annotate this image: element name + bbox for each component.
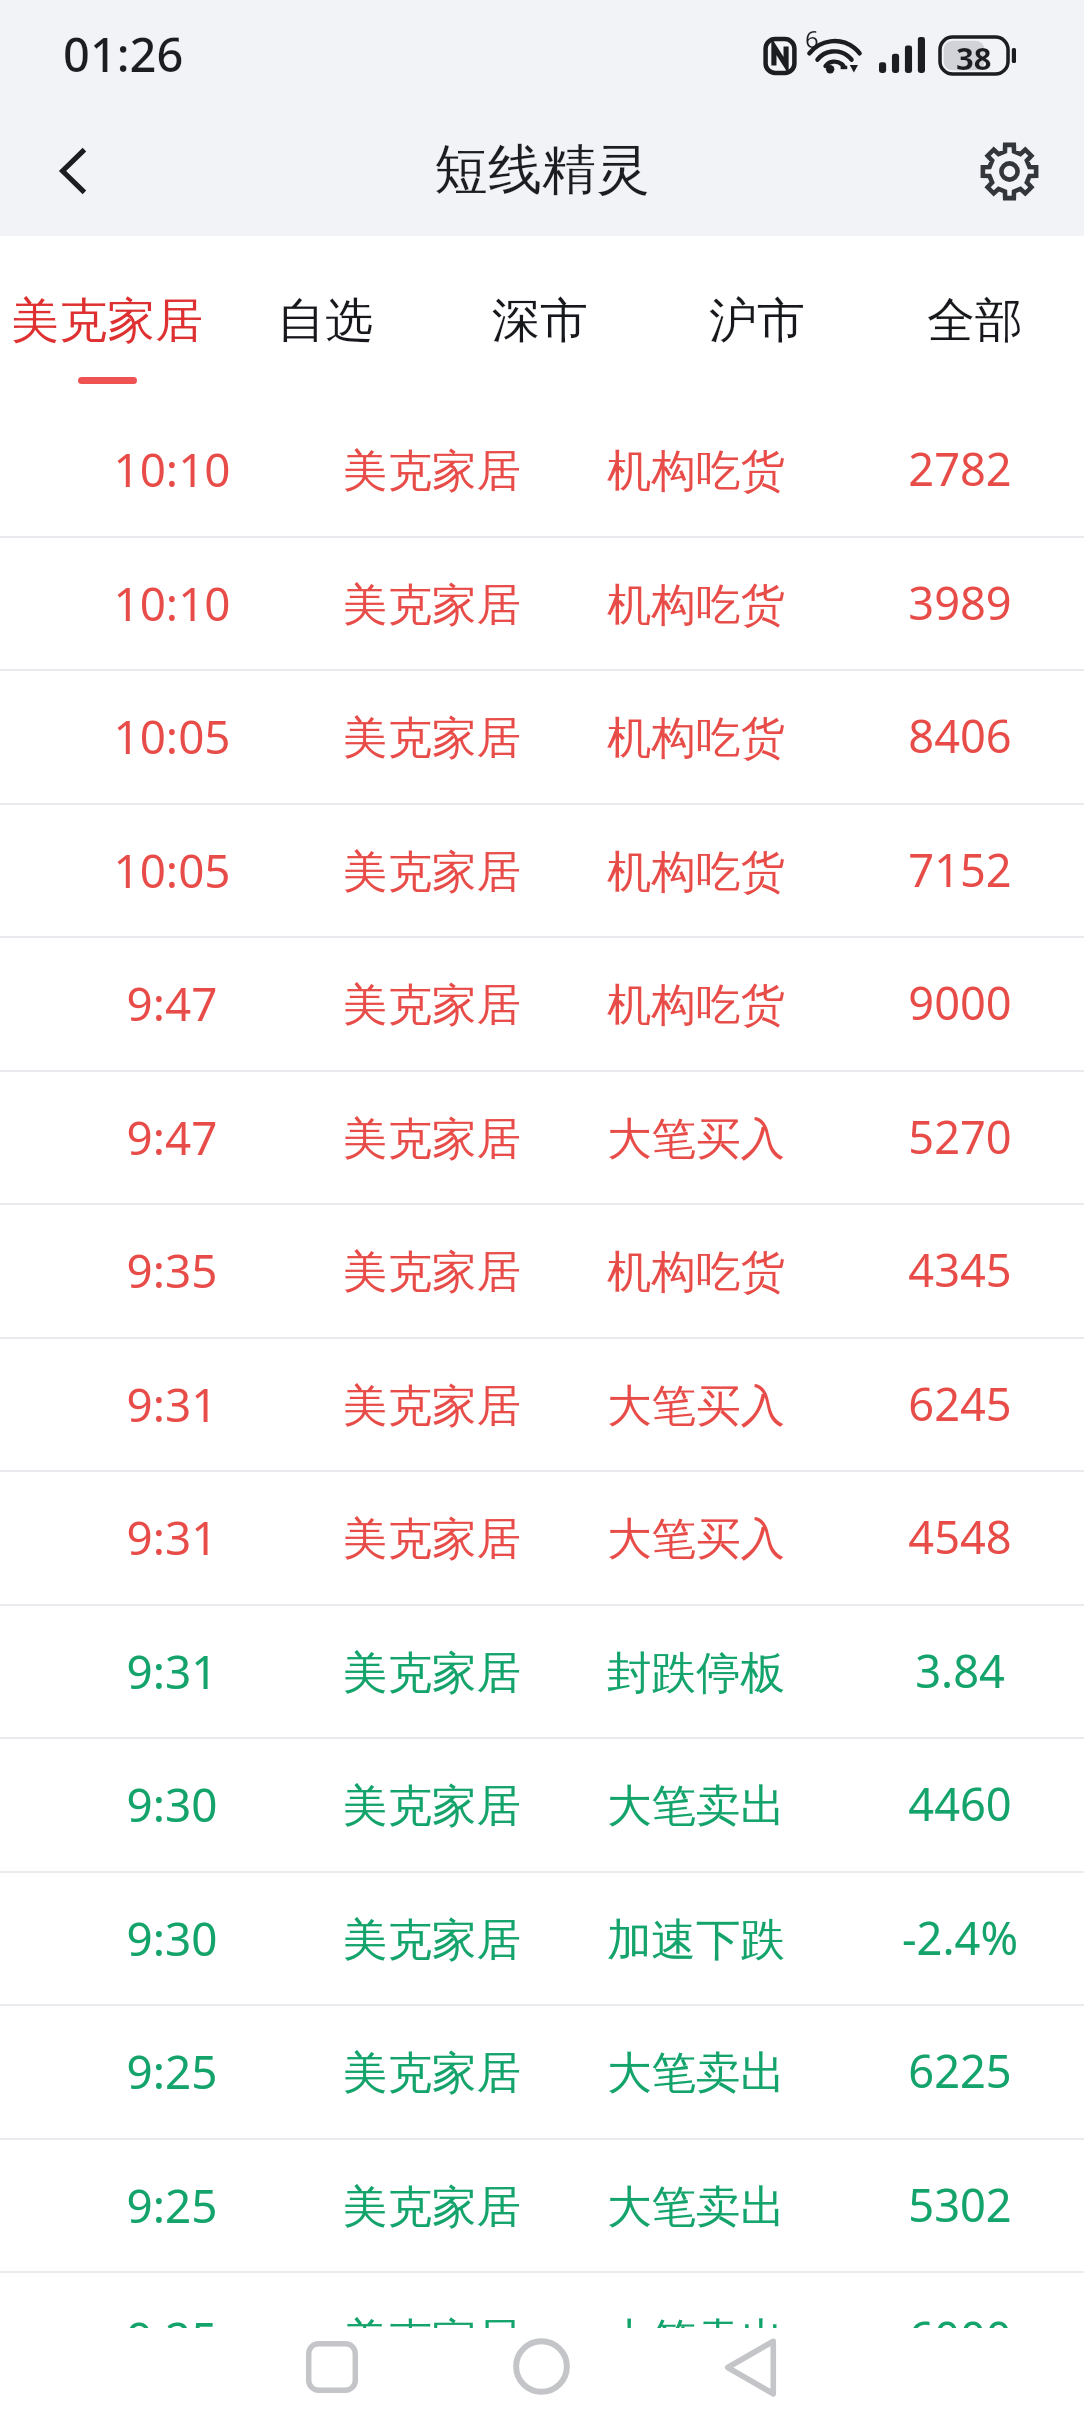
staticText: 9:47 [57, 972, 287, 1034]
button[interactable]: Back [646, 2328, 855, 2412]
button[interactable]: 10:05 [0, 671, 1084, 805]
staticText: 10:05 [57, 839, 287, 901]
button[interactable]: 9:35 [0, 1205, 1084, 1339]
staticText: 沪市 [709, 291, 805, 351]
staticText: 5270 [845, 1106, 1075, 1168]
staticText: 机构吃货 [566, 844, 826, 900]
staticText: 全部 [927, 291, 1023, 351]
staticText: 9:30 [57, 1773, 287, 1835]
staticText: 9:35 [57, 1239, 287, 1301]
staticText: 大笔卖出 [566, 2045, 826, 2101]
button[interactable]: Recents [226, 2328, 437, 2412]
staticText: 4548 [845, 1506, 1075, 1568]
staticText: -2.4% [845, 1907, 1075, 1969]
staticText: 深市 [492, 291, 588, 351]
button[interactable]: 10:10 [0, 404, 1084, 538]
button[interactable]: 沪市 [651, 236, 863, 404]
staticText: 9:25 [57, 2307, 287, 2369]
staticText: 9:30 [57, 1907, 287, 1969]
staticText: 10:10 [57, 438, 287, 500]
button[interactable]: Home [437, 2328, 646, 2412]
staticText: 01:26 [63, 22, 184, 86]
staticText: 9:31 [57, 1506, 287, 1568]
staticText: 4345 [845, 1239, 1075, 1301]
staticText: 6 [805, 22, 819, 55]
staticText: 自选 [277, 291, 373, 351]
staticText: 大笔买入 [566, 1111, 826, 1167]
button[interactable]: 9:47 [0, 938, 1084, 1072]
button[interactable]: 9:25 [0, 2140, 1084, 2274]
button[interactable]: 9:30 [0, 1739, 1084, 1873]
staticText: 机构吃货 [566, 977, 826, 1033]
staticText: 机构吃货 [566, 577, 826, 633]
staticText: 3989 [845, 572, 1075, 634]
staticText: 6225 [845, 2040, 1075, 2102]
staticText: 5302 [845, 2174, 1075, 2236]
staticText: 美克家居 [302, 577, 562, 633]
staticText: 6000 [845, 2307, 1075, 2369]
staticText: 机构吃货 [566, 710, 826, 766]
staticText: 机构吃货 [566, 443, 826, 499]
button[interactable]: 9:25 [0, 2273, 1084, 2407]
button[interactable]: 9:47 [0, 1072, 1084, 1206]
staticText: 9:31 [57, 1640, 287, 1702]
staticText: 加速下跌 [566, 1912, 826, 1968]
staticText: 大笔买入 [566, 1378, 826, 1434]
staticText: 美克家居 [302, 1111, 562, 1167]
staticText: 大笔卖出 [566, 2179, 826, 2235]
button[interactable]: Settings [949, 111, 1069, 231]
button[interactable]: 9:31 [0, 1606, 1084, 1740]
staticText: 4460 [845, 1773, 1075, 1835]
staticText: 10:10 [57, 572, 287, 634]
staticText: 短线精灵 [434, 136, 650, 204]
staticText: 大笔卖出 [566, 2312, 826, 2368]
staticText: 9000 [845, 972, 1075, 1034]
staticText: 美克家居 [302, 443, 562, 499]
staticText: 38 [956, 37, 992, 74]
staticText: 封跌停板 [566, 1645, 826, 1701]
staticText: 7152 [845, 839, 1075, 901]
staticText: 美克家居 [302, 1244, 562, 1300]
staticText: 9:25 [57, 2174, 287, 2236]
staticText: 大笔卖出 [566, 1778, 826, 1834]
staticText: 9:31 [57, 1373, 287, 1435]
staticText: 9:25 [57, 2040, 287, 2102]
staticText: 美克家居 [302, 1645, 562, 1701]
button[interactable]: 自选 [219, 236, 431, 404]
staticText: 美克家居 [302, 1912, 562, 1968]
button[interactable]: 9:30 [0, 1873, 1084, 2007]
staticText: 6245 [845, 1373, 1075, 1435]
button[interactable]: 9:31 [0, 1472, 1084, 1606]
button[interactable]: Back [17, 115, 129, 227]
staticText: 美克家居 [302, 710, 562, 766]
button[interactable]: 美克家居 [1, 236, 213, 404]
staticText: 美克家居 [302, 2045, 562, 2101]
staticText: 10:05 [57, 705, 287, 767]
staticText: 大笔买入 [566, 1511, 826, 1567]
staticText: 美克家居 [302, 1778, 562, 1834]
staticText: 美克家居 [302, 1511, 562, 1567]
staticText: 8406 [845, 705, 1075, 767]
button[interactable]: 10:05 [0, 805, 1084, 939]
button[interactable]: 9:25 [0, 2006, 1084, 2140]
staticText: 美克家居 [302, 1378, 562, 1434]
button[interactable]: 全部 [869, 236, 1081, 404]
button[interactable]: 深市 [434, 236, 646, 404]
staticText: 美克家居 [302, 2179, 562, 2235]
staticText: 2782 [845, 438, 1075, 500]
button[interactable]: 9:31 [0, 1339, 1084, 1473]
button[interactable]: 10:10 [0, 538, 1084, 672]
staticText: 3.84 [845, 1640, 1075, 1702]
staticText: 美克家居 [302, 977, 562, 1033]
staticText: 美克家居 [302, 844, 562, 900]
staticText: 9:47 [57, 1106, 287, 1168]
staticText: 美克家居 [302, 2312, 562, 2368]
staticText: 美克家居 [11, 291, 203, 351]
staticText: 机构吃货 [566, 1244, 826, 1300]
